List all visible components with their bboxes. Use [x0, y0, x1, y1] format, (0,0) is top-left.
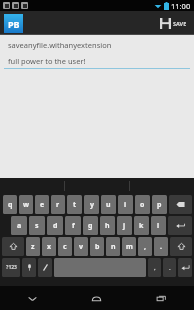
staticText: h [105, 221, 110, 231]
button[interactable]: . [163, 258, 176, 277]
button[interactable]: Enter [178, 258, 192, 277]
button[interactable]: s [29, 216, 45, 235]
button[interactable]: q [3, 195, 17, 214]
button[interactable]: z [26, 237, 40, 256]
staticText: p [157, 200, 162, 210]
button[interactable]: App icon [4, 14, 23, 33]
button[interactable]: a [11, 216, 27, 235]
button[interactable]: t [67, 195, 82, 214]
staticText: SAVE [173, 20, 187, 27]
staticText: w [23, 200, 29, 210]
staticText: n [111, 242, 116, 252]
staticText: z [31, 242, 35, 252]
staticText: , [144, 242, 146, 252]
button[interactable]: Enter [168, 216, 192, 235]
staticText: . [160, 242, 162, 252]
button[interactable]: , [148, 258, 161, 277]
staticText: k [139, 221, 144, 231]
staticText: saveanyfile.withanyextension [8, 40, 112, 50]
staticText: j [123, 221, 126, 231]
button[interactable]: f [65, 216, 81, 235]
button[interactable]: g [83, 216, 98, 235]
button[interactable]: w [19, 195, 33, 214]
staticText: t [73, 200, 77, 210]
staticText: . [169, 264, 171, 272]
button[interactable]: d [47, 216, 63, 235]
staticText: x [47, 242, 52, 252]
staticText: d [53, 221, 58, 231]
button[interactable]: e [35, 195, 49, 214]
button[interactable]: . [154, 237, 168, 256]
button[interactable]: o [135, 195, 150, 214]
staticText: y [90, 200, 94, 210]
button[interactable]: Home [64, 286, 129, 310]
button[interactable]: , [138, 237, 152, 256]
button[interactable]: full power to the user! [4, 56, 190, 69]
button[interactable]: Handwriting [38, 258, 52, 277]
button[interactable]: j [117, 216, 132, 235]
staticText: o [140, 200, 145, 210]
staticText: r [56, 200, 60, 210]
button[interactable]: b [90, 237, 104, 256]
staticText: 11:00 [171, 1, 191, 11]
button[interactable]: r [51, 195, 65, 214]
button[interactable]: ?123 [2, 258, 20, 277]
staticText: PB [8, 18, 20, 30]
button[interactable]: Back [0, 286, 64, 310]
button[interactable]: i [118, 195, 133, 214]
staticText: s [35, 221, 39, 231]
button[interactable]: k [134, 216, 149, 235]
staticText: full power to the user! [8, 56, 86, 66]
button[interactable]: Shift [2, 237, 24, 256]
button[interactable]: Shift [170, 237, 192, 256]
staticText: e [40, 200, 45, 210]
button[interactable]: u [101, 195, 116, 214]
button[interactable]: x [42, 237, 56, 256]
button[interactable]: l [151, 216, 166, 235]
button[interactable]: p [152, 195, 167, 214]
staticText: v [79, 242, 83, 252]
staticText: u [106, 200, 111, 210]
staticText: , [154, 264, 156, 272]
button[interactable]: SAVE [155, 11, 192, 35]
staticText: q [8, 200, 13, 210]
button[interactable]: c [58, 237, 72, 256]
staticText: g [88, 221, 93, 231]
staticText: l [157, 221, 160, 231]
staticText: f [72, 221, 75, 231]
button[interactable]: Delete [169, 195, 192, 214]
button[interactable]: y [84, 195, 99, 214]
staticText: i [124, 200, 127, 210]
staticText: m [126, 242, 133, 252]
staticText: c [63, 242, 67, 252]
button[interactable]: v [74, 237, 88, 256]
staticText: ?123 [6, 264, 17, 271]
button[interactable]: Voice input [22, 258, 36, 277]
staticText: b [95, 242, 100, 252]
staticText: a [17, 221, 22, 231]
button[interactable]: Recents [129, 286, 194, 310]
button[interactable]: n [106, 237, 120, 256]
button[interactable]: m [122, 237, 136, 256]
button[interactable]: h [100, 216, 115, 235]
